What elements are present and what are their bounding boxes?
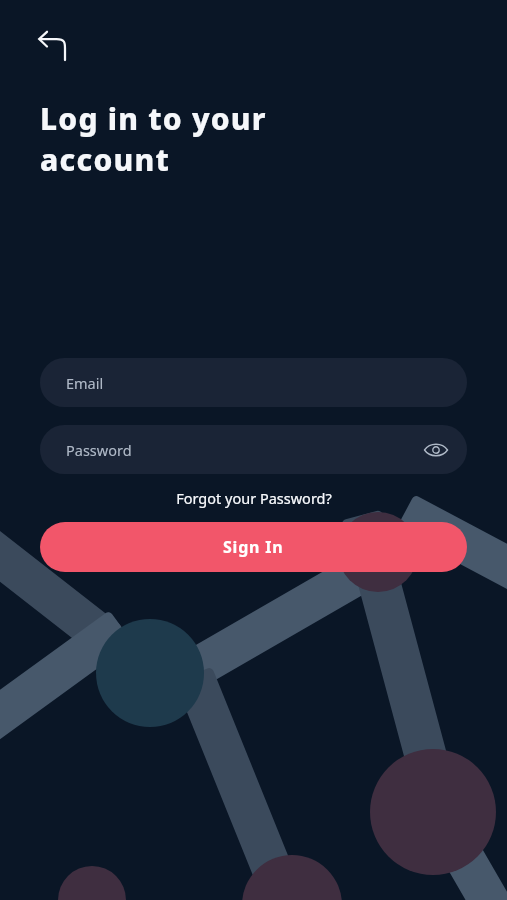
button[interactable]: Password	[40, 425, 467, 474]
button[interactable]: Email	[40, 358, 467, 407]
button[interactable]: Show password	[419, 433, 453, 467]
staticText: Sign In	[223, 536, 284, 558]
button[interactable]: Forgot your Password?	[170, 486, 338, 510]
button[interactable]: Sign In	[40, 522, 467, 572]
staticText: Password	[66, 440, 132, 460]
staticText: Forgot your Password?	[176, 488, 332, 508]
staticText: Log in to your account	[40, 98, 357, 180]
button[interactable]: Back	[30, 22, 76, 68]
staticText: Email	[66, 373, 104, 393]
